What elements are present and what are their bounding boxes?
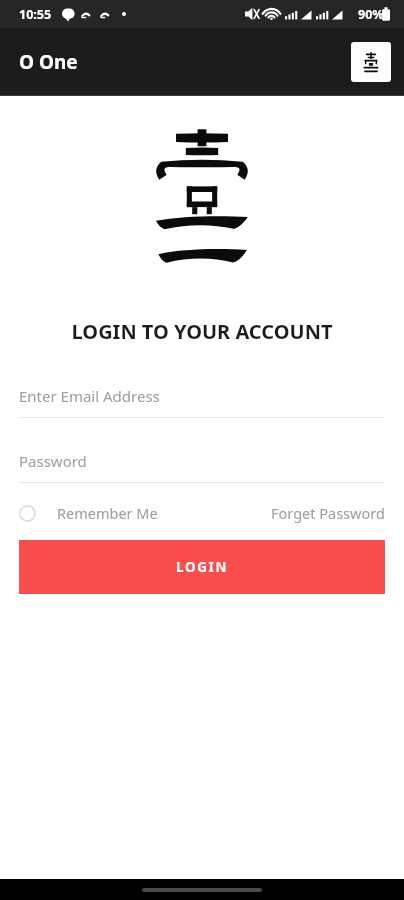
button[interactable]: LOGIN <box>19 540 385 594</box>
staticText: 10:55 <box>19 6 52 23</box>
staticText: LOGIN <box>176 558 228 576</box>
staticText: LOGIN TO YOUR ACCOUNT <box>0 318 404 345</box>
staticText: 90% <box>358 6 384 23</box>
button[interactable]: Open account <box>351 42 391 82</box>
staticText: O One <box>19 49 78 75</box>
button[interactable]: Remember Me <box>19 503 158 523</box>
staticText: Remember Me <box>57 503 158 523</box>
staticText: Password <box>19 451 87 471</box>
staticText: Forget Password <box>271 503 385 523</box>
button[interactable]: Enter Email Address <box>19 375 385 418</box>
button[interactable]: Forget Password <box>271 503 385 523</box>
staticText: Enter Email Address <box>19 386 160 406</box>
button[interactable]: Password <box>19 440 385 483</box>
